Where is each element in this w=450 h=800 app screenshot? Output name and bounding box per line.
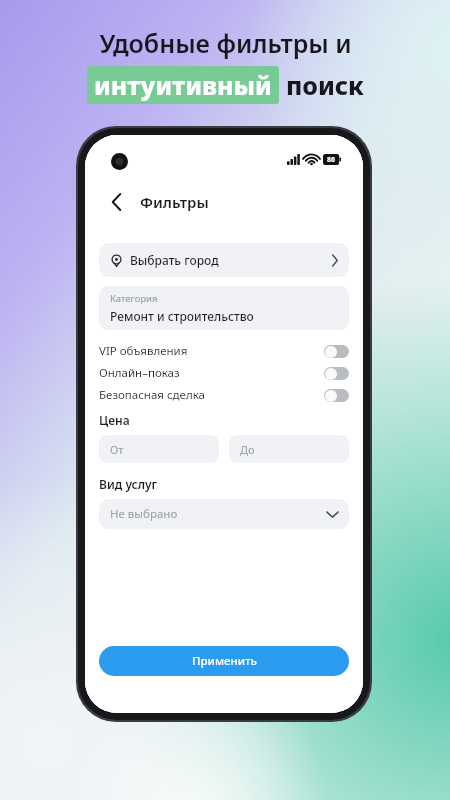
staticText: От (110, 442, 124, 457)
button[interactable]: От (99, 435, 219, 463)
staticText: Удобные фильтры и (99, 26, 352, 60)
button[interactable]: Применить (99, 646, 349, 676)
button[interactable]: VIP объявления (99, 340, 349, 362)
button[interactable]: Категория (99, 286, 349, 330)
staticText: Онлайн–показ (99, 365, 180, 381)
staticText: VIP объявления (99, 343, 188, 359)
staticText: Категория (110, 292, 158, 305)
staticText: Вид услуг (99, 476, 158, 492)
button[interactable]: Назад (103, 189, 129, 215)
staticText: Применить (192, 653, 257, 669)
button[interactable]: Выбрать город (99, 243, 349, 277)
staticText: Безопасная сделка (99, 387, 205, 403)
staticText: Ремонт и строительство (110, 308, 254, 324)
button[interactable]: До (229, 435, 349, 463)
staticText: интуитивный (94, 68, 272, 102)
staticText: Фильтры (140, 192, 209, 212)
button[interactable]: Не выбрано (99, 499, 349, 529)
button[interactable]: Безопасная сделка (99, 384, 349, 406)
staticText: 86 (327, 155, 336, 165)
staticText: Выбрать город (130, 252, 219, 268)
staticText: поиск (286, 68, 364, 102)
staticText: Цена (99, 412, 130, 428)
staticText: Не выбрано (110, 506, 178, 522)
button[interactable]: Онлайн–показ (99, 362, 349, 384)
staticText: До (240, 442, 255, 457)
